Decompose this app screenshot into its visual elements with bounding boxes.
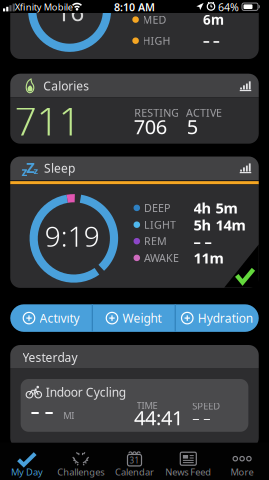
staticText: 6m [203, 11, 224, 28]
button[interactable]: Hydration [175, 304, 259, 332]
staticText: 4h 5m [194, 198, 238, 218]
button[interactable]: My Day [0, 443, 54, 480]
staticText: z [33, 164, 38, 177]
staticText: ACTIVE [186, 105, 222, 120]
staticText: z [21, 164, 27, 180]
button[interactable]: Activity [10, 304, 92, 332]
button[interactable]: News Feed [161, 443, 215, 480]
staticText: 5h 14m [194, 215, 246, 234]
staticText: My Day [11, 466, 43, 478]
button[interactable]: Challenges [54, 443, 108, 480]
staticText: MED [142, 12, 166, 27]
staticText: MI [63, 409, 74, 421]
staticText: SPEED [192, 400, 220, 412]
staticText: 16 [56, 0, 84, 28]
staticText: – – [192, 408, 210, 428]
button[interactable]: z [10, 157, 259, 287]
staticText: Sleep [44, 160, 75, 176]
staticText: – – [194, 231, 212, 251]
staticText: 711 [15, 95, 81, 146]
staticText: Xfinity Mobile [15, 1, 73, 13]
button[interactable]: Calories [10, 74, 259, 144]
staticText: Weight [122, 310, 161, 326]
button[interactable]: Intensity Minutes [10, 0, 259, 59]
staticText: 31 [129, 455, 139, 466]
button[interactable]: Indoor Cycling [21, 379, 248, 432]
staticText: 5 [187, 113, 198, 140]
button[interactable]: Weight [92, 304, 175, 332]
button[interactable]: More [215, 443, 269, 480]
staticText: HIGH [142, 34, 170, 48]
staticText: Z [26, 157, 34, 177]
staticText: – – [31, 400, 54, 423]
staticText: 706 [134, 113, 167, 140]
staticText: More [231, 466, 254, 478]
staticText: Challenges [57, 466, 104, 478]
staticText: REM [144, 234, 167, 248]
staticText: AWAKE [144, 251, 179, 265]
staticText: Calories [43, 78, 89, 94]
button[interactable]: 31 [108, 443, 161, 480]
staticText: DEEP [144, 201, 170, 215]
staticText: 44:41 [134, 404, 183, 431]
staticText: Calendar [115, 466, 154, 478]
staticText: LIGHT [144, 218, 176, 232]
staticText: RESTING [134, 105, 179, 120]
staticText: Hydration [198, 310, 253, 326]
staticText: TIME [137, 399, 158, 412]
staticText: News Feed [165, 466, 211, 478]
staticText: 64% [218, 0, 239, 14]
staticText: Yesterday [22, 349, 77, 365]
staticText: 11m [194, 248, 224, 268]
staticText: Activity [39, 310, 79, 326]
staticText: Indoor Cycling [46, 384, 126, 400]
staticText: – – [203, 32, 220, 49]
staticText: 9:19 [45, 217, 100, 254]
staticText: 8:10 AM [114, 0, 155, 14]
